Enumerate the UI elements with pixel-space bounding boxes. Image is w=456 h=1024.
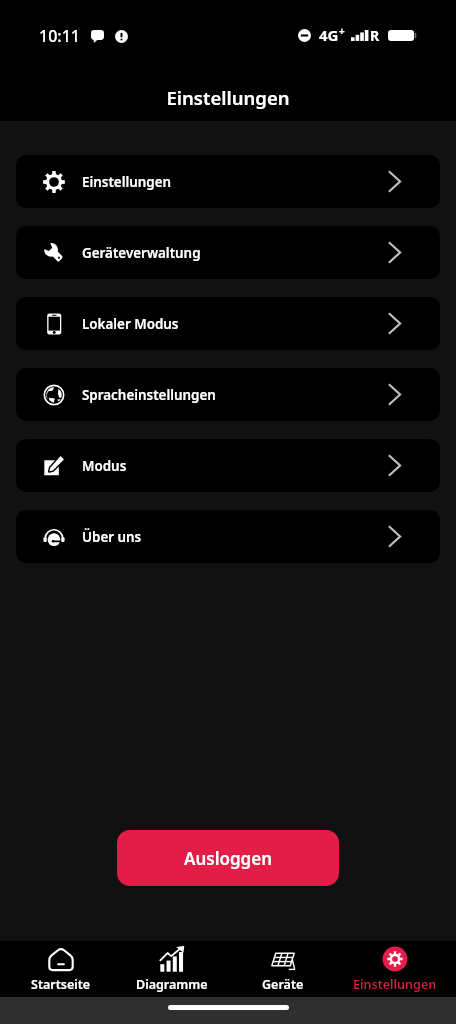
staticText: +	[339, 24, 345, 38]
button[interactable]: Lokaler Modus	[16, 297, 440, 350]
button[interactable]: Geräte	[227, 941, 339, 997]
button[interactable]: Einstellungen	[16, 155, 440, 208]
staticText: R	[370, 26, 380, 45]
staticText: Geräteverwaltung	[82, 244, 201, 262]
staticText: Einstellungen	[0, 85, 456, 110]
staticText: 4G	[319, 25, 339, 45]
staticText: 10:11	[39, 25, 80, 47]
staticText: Geräte	[262, 976, 304, 993]
button[interactable]: Spracheinstellungen	[16, 368, 440, 421]
button[interactable]: Über uns	[16, 510, 440, 563]
button[interactable]: Diagramme	[116, 941, 227, 997]
staticText: Modus	[82, 457, 127, 475]
button[interactable]: Einstellungen	[339, 941, 451, 997]
button[interactable]: Startseite	[5, 941, 116, 997]
button[interactable]: Geräteverwaltung	[16, 226, 440, 279]
staticText: Einstellungen	[82, 173, 172, 191]
staticText: Diagramme	[136, 976, 208, 993]
staticText: Ausloggen	[184, 847, 273, 870]
button[interactable]: Ausloggen	[117, 830, 339, 886]
staticText: Lokaler Modus	[82, 315, 179, 333]
staticText: Startseite	[31, 976, 91, 993]
staticText: Über uns	[82, 528, 142, 546]
staticText: Spracheinstellungen	[82, 386, 216, 404]
staticText: Einstellungen	[353, 976, 437, 993]
button[interactable]: Modus	[16, 439, 440, 492]
